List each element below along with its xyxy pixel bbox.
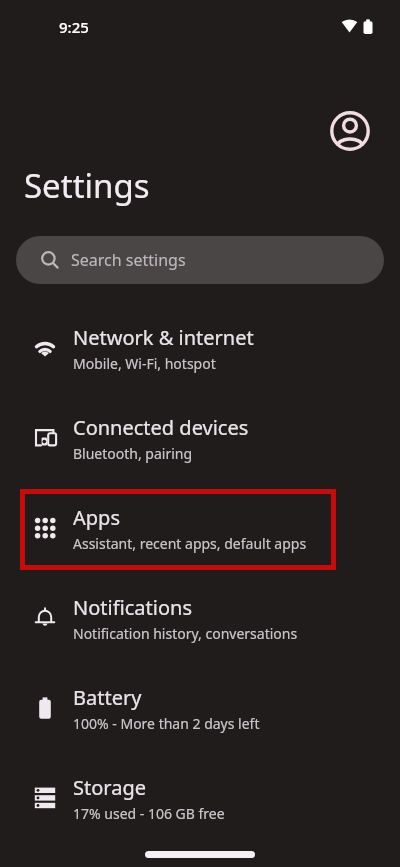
button[interactable]: Storage xyxy=(0,753,400,843)
staticText: 100% - More than 2 days left xyxy=(73,714,260,733)
staticText: Connected devices xyxy=(73,414,249,441)
button[interactable] xyxy=(326,107,374,155)
staticText: 17% used - 106 GB free xyxy=(73,804,225,823)
button[interactable]: Apps xyxy=(0,483,400,573)
staticText: Notifications xyxy=(73,594,192,621)
staticText: 9:25 xyxy=(59,17,89,37)
button[interactable]: Search settings xyxy=(16,236,384,284)
button[interactable]: Connected devices xyxy=(0,393,400,483)
staticText: Search settings xyxy=(71,249,186,271)
staticText: Settings xyxy=(24,163,150,208)
staticText: Mobile, Wi-Fi, hotspot xyxy=(73,354,216,373)
staticText: Assistant, recent apps, default apps xyxy=(73,534,307,553)
staticText: Bluetooth, pairing xyxy=(73,444,193,463)
staticText: Network & internet xyxy=(73,324,254,351)
button[interactable]: Network & internet xyxy=(0,303,400,393)
staticText: Battery xyxy=(73,684,142,711)
button[interactable]: Notifications xyxy=(0,573,400,663)
button[interactable]: Battery xyxy=(0,663,400,753)
staticText: Apps xyxy=(73,504,120,531)
staticText: Notification history, conversations xyxy=(73,624,298,643)
staticText: Storage xyxy=(73,774,146,801)
